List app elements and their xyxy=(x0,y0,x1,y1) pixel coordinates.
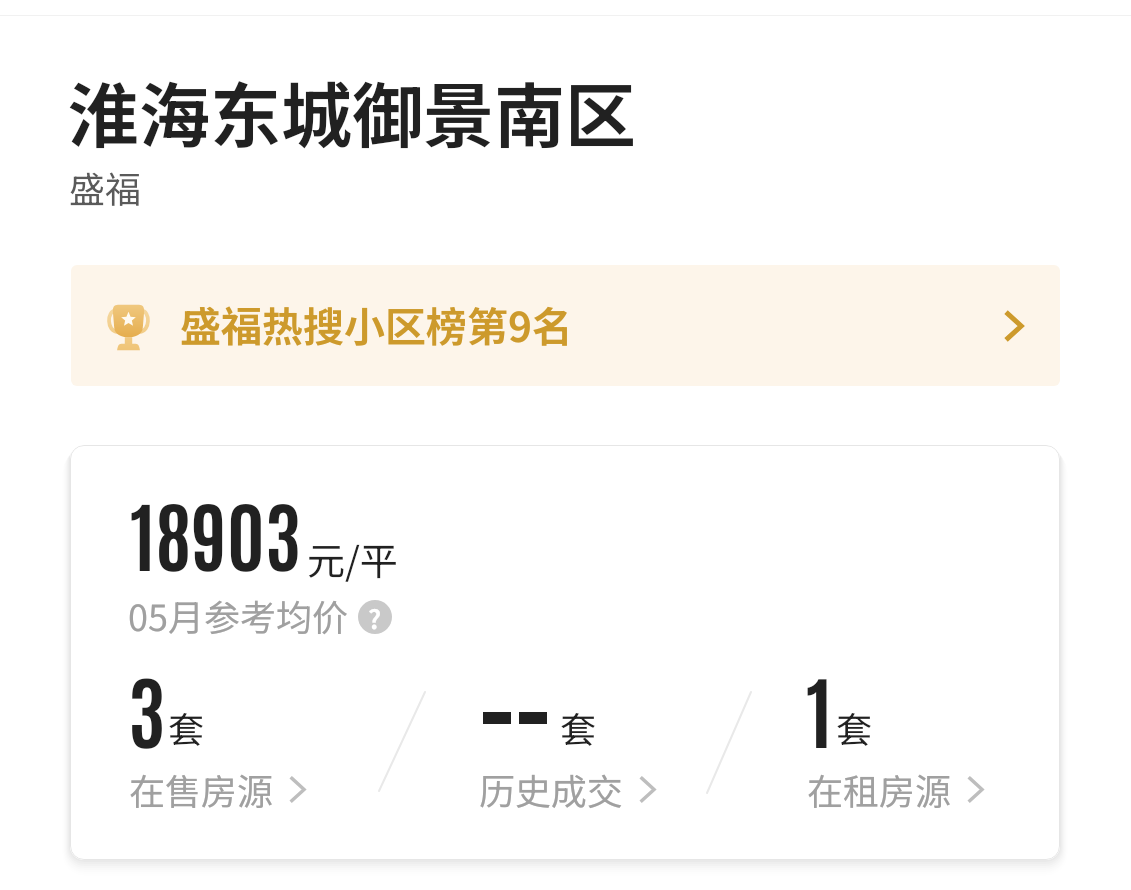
staticText: 套 xyxy=(168,701,205,753)
staticText: 1 xyxy=(806,656,833,760)
staticText: 套 xyxy=(560,701,597,753)
staticText: 历史成交 xyxy=(479,763,624,815)
staticText: 05月参考均价 xyxy=(128,589,348,641)
staticText: 在售房源 xyxy=(129,763,274,815)
button[interactable]: 价格说明 xyxy=(358,600,392,634)
staticText: 淮海东城御景南区 xyxy=(68,60,637,163)
button[interactable]: 套 xyxy=(458,651,738,821)
button[interactable]: 1 xyxy=(786,651,1060,821)
other: 热搜榜 xyxy=(100,295,157,352)
staticText: 套 xyxy=(836,701,873,753)
staticText: ? xyxy=(368,600,382,633)
staticText: 元/平 xyxy=(307,531,398,586)
staticText: 18903 xyxy=(130,482,301,582)
staticText: 盛福热搜小区榜第9名 xyxy=(180,294,573,353)
staticText: 3 xyxy=(128,656,166,760)
button[interactable]: 热搜榜 xyxy=(71,265,1060,386)
button[interactable]: 3 xyxy=(108,651,388,821)
staticText: 盛福 xyxy=(69,161,142,213)
staticText: 在租房源 xyxy=(807,763,952,815)
